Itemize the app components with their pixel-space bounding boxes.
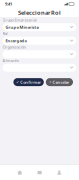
staticText: Organización [2, 44, 25, 50]
staticText: Cancelar [52, 79, 69, 85]
staticText: Seleccionar Rol [18, 9, 61, 16]
staticText: Grupo Minorista [5, 24, 38, 30]
staticText: Grupo Empresarial [2, 17, 36, 23]
button[interactable]: Encargado [2, 37, 76, 45]
button[interactable]: Perfil [49, 165, 69, 180]
button[interactable]: Inicio [10, 165, 30, 180]
button[interactable] [2, 50, 76, 58]
staticText: ✓ [16, 80, 19, 84]
button[interactable]: Grupo Minorista [2, 23, 76, 31]
staticText: Almacén [2, 58, 18, 63]
staticText: Encargado [5, 38, 26, 43]
staticText: ✕ [49, 81, 51, 84]
button[interactable]: ✕ [46, 78, 73, 86]
staticText: Rol [2, 31, 7, 36]
button[interactable] [2, 64, 76, 72]
button[interactable]: ✓ [13, 78, 44, 86]
staticText: 9:41 [5, 1, 12, 7]
staticText: Confirmar [20, 79, 41, 85]
button[interactable]: Pedidos [30, 165, 49, 180]
